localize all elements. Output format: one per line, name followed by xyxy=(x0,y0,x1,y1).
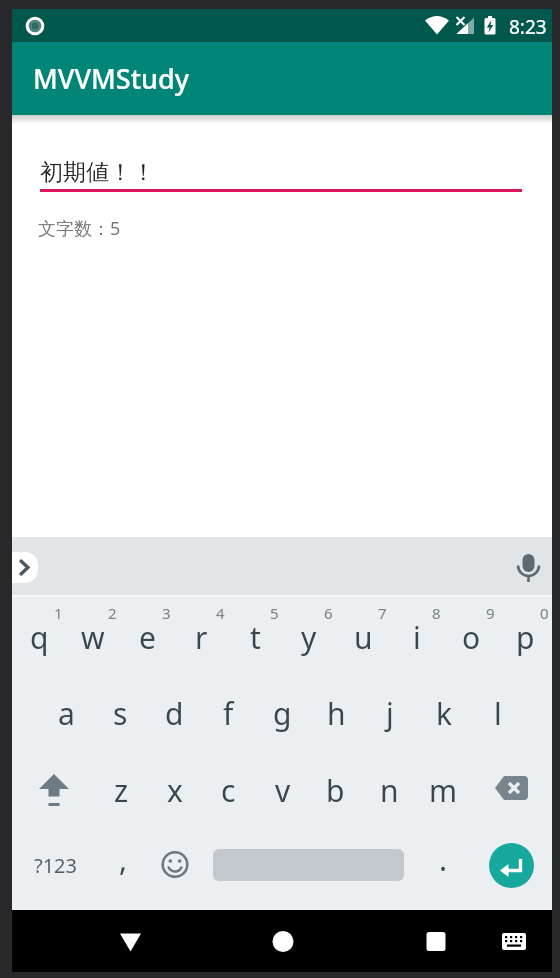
staticText: s xyxy=(113,693,128,734)
button[interactable]: ?123 xyxy=(25,835,85,895)
button[interactable]: f xyxy=(201,675,255,751)
button[interactable] xyxy=(415,921,457,963)
button[interactable]: u xyxy=(336,599,390,675)
staticText: n xyxy=(380,770,399,811)
staticText: t xyxy=(250,617,261,658)
button[interactable]: 初期値！！ xyxy=(40,155,522,190)
staticText: 8:23 xyxy=(509,14,547,40)
staticText: c xyxy=(221,770,236,811)
staticText: 6 xyxy=(324,603,333,623)
staticText: 3 xyxy=(162,603,171,623)
button[interactable] xyxy=(481,752,541,828)
staticText: m xyxy=(429,770,458,811)
button[interactable]: q xyxy=(12,599,66,675)
staticText: j xyxy=(386,693,394,734)
button[interactable]: h xyxy=(309,675,363,751)
staticText: 2 xyxy=(108,603,117,623)
staticText: 9 xyxy=(486,603,495,623)
button[interactable]: x xyxy=(148,752,201,828)
staticText: 1 xyxy=(54,603,63,623)
button[interactable]: w xyxy=(66,599,120,675)
button[interactable]: v xyxy=(256,752,309,828)
button[interactable] xyxy=(493,921,535,963)
staticText: z xyxy=(114,770,129,811)
button[interactable]: r xyxy=(174,599,228,675)
button[interactable] xyxy=(12,552,38,583)
staticText: e xyxy=(139,617,156,658)
button[interactable]: j xyxy=(363,675,417,751)
button[interactable]: o xyxy=(444,599,498,675)
button[interactable] xyxy=(262,921,304,963)
button[interactable] xyxy=(155,845,195,885)
staticText: u xyxy=(354,617,373,658)
staticText: h xyxy=(327,693,346,734)
button[interactable] xyxy=(489,843,534,888)
button[interactable]: t xyxy=(228,599,282,675)
button[interactable]: a xyxy=(39,675,93,751)
button[interactable]: g xyxy=(255,675,309,751)
button[interactable]: d xyxy=(147,675,201,751)
button[interactable]: k xyxy=(417,675,471,751)
staticText: 8 xyxy=(432,603,441,623)
staticText: d xyxy=(165,693,184,734)
staticText: MVVMStudy xyxy=(33,60,189,97)
staticText: a xyxy=(58,693,75,734)
staticText: 初期値！！ xyxy=(40,158,155,187)
staticText: r xyxy=(195,617,208,658)
staticText: , xyxy=(119,839,128,880)
staticText: . xyxy=(439,839,448,880)
button[interactable]: l xyxy=(471,675,525,751)
staticText: y xyxy=(301,617,317,658)
button[interactable]: . xyxy=(423,829,463,889)
staticText: 7 xyxy=(378,603,387,623)
staticText: f xyxy=(223,693,234,734)
staticText: 4 xyxy=(216,603,225,623)
button[interactable]: p xyxy=(498,599,552,675)
button[interactable]: , xyxy=(103,829,143,889)
button[interactable]: e xyxy=(120,599,174,675)
button[interactable]: z xyxy=(95,752,148,828)
staticText: g xyxy=(273,693,292,734)
button[interactable]: s xyxy=(93,675,147,751)
staticText: k xyxy=(436,693,453,734)
staticText: l xyxy=(494,693,502,734)
staticText: b xyxy=(326,770,345,811)
staticText: v xyxy=(275,770,291,811)
staticText: i xyxy=(413,617,421,658)
button[interactable] xyxy=(507,547,549,589)
button[interactable]: i xyxy=(390,599,444,675)
button[interactable] xyxy=(24,752,84,828)
staticText: o xyxy=(462,617,481,658)
staticText: ?123 xyxy=(34,852,77,879)
button[interactable]: y xyxy=(282,599,336,675)
button[interactable] xyxy=(110,921,152,963)
staticText: 文字数：5 xyxy=(38,216,121,241)
staticText: q xyxy=(30,617,49,658)
button[interactable]: n xyxy=(363,752,416,828)
button[interactable]: b xyxy=(309,752,362,828)
staticText: 0 xyxy=(540,603,549,623)
staticText: w xyxy=(81,617,105,658)
button[interactable]: c xyxy=(202,752,255,828)
staticText: 5 xyxy=(270,603,279,623)
staticText: x xyxy=(167,770,183,811)
staticText: p xyxy=(516,617,535,658)
button[interactable]: m xyxy=(417,752,470,828)
